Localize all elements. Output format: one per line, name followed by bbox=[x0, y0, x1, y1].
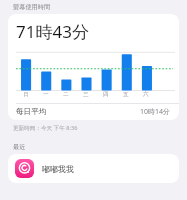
staticText: 三 bbox=[83, 91, 89, 98]
other: 嘟嘟我我 app icon bbox=[15, 159, 34, 178]
staticText: 五 bbox=[123, 91, 129, 98]
staticText: 六 bbox=[143, 91, 149, 98]
staticText: 一 bbox=[43, 91, 49, 98]
staticText: 71時43分 bbox=[16, 20, 89, 43]
staticText: 每日平均 bbox=[16, 107, 47, 117]
staticText: 最近 bbox=[13, 143, 26, 151]
staticText: 更新時間：今天 下午 8:36 bbox=[13, 124, 78, 132]
staticText: 嘟嘟我我 bbox=[42, 164, 74, 174]
button[interactable]: 71時43分 bbox=[8, 14, 179, 120]
staticText: 日 bbox=[23, 91, 29, 98]
staticText: 二 bbox=[63, 91, 69, 98]
staticText: 10時14分 bbox=[140, 107, 171, 117]
staticText: 螢幕使用時間 bbox=[13, 3, 51, 11]
button[interactable]: 嘟嘟我我 app icon bbox=[8, 154, 179, 183]
staticText: 四 bbox=[103, 91, 109, 98]
